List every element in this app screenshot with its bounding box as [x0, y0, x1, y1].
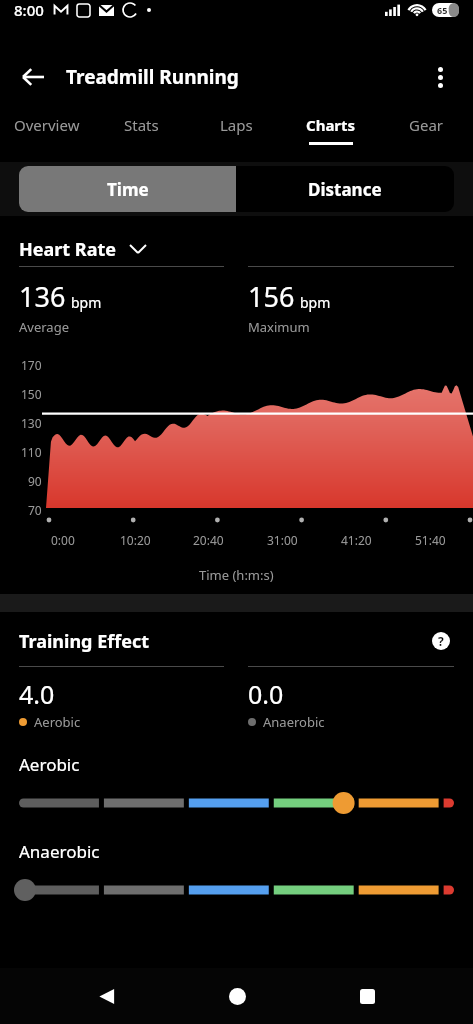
- staticText: 170: [21, 357, 42, 373]
- staticText: Treadmill Running: [66, 64, 239, 90]
- staticText: 150: [21, 386, 42, 402]
- staticText: 156: [248, 278, 295, 315]
- staticText: Anaerobic: [19, 840, 100, 863]
- staticText: Gear: [409, 115, 443, 135]
- staticText: bpm: [71, 293, 102, 312]
- staticText: 0.0: [248, 677, 284, 711]
- staticText: 130: [21, 415, 42, 431]
- staticText: 110: [21, 444, 42, 460]
- staticText: Overview: [14, 115, 80, 135]
- staticText: Time: [107, 178, 149, 201]
- staticText: 0:00: [51, 532, 75, 548]
- staticText: Time (h:m:s): [199, 566, 274, 584]
- button[interactable]: Home: [213, 972, 261, 1020]
- staticText: 8:00: [14, 0, 44, 20]
- button[interactable]: Gear: [378, 106, 473, 154]
- button[interactable]: Distance: [236, 166, 454, 212]
- button[interactable]: Recent apps: [343, 972, 391, 1020]
- button[interactable]: Heart Rate: [19, 232, 454, 266]
- staticText: Laps: [220, 115, 253, 135]
- staticText: Stats: [124, 115, 159, 135]
- staticText: Heart Rate: [19, 237, 116, 262]
- button[interactable]: Stats: [94, 106, 188, 154]
- staticText: 65: [437, 4, 448, 16]
- staticText: Average: [19, 318, 69, 336]
- staticText: 31:00: [267, 532, 298, 548]
- staticText: bpm: [300, 293, 331, 312]
- button[interactable]: More options: [417, 54, 463, 100]
- staticText: 90: [28, 473, 42, 489]
- staticText: 4.0: [19, 677, 55, 711]
- staticText: Aerobic: [19, 753, 80, 776]
- button[interactable]: Overview: [0, 106, 94, 154]
- button[interactable]: Back: [82, 972, 130, 1020]
- staticText: 10:20: [120, 532, 151, 548]
- staticText: 70: [28, 502, 42, 518]
- staticText: Anaerobic: [263, 713, 325, 731]
- staticText: 136: [19, 278, 66, 315]
- staticText: Aerobic: [34, 713, 81, 731]
- button[interactable]: Back: [10, 54, 56, 100]
- button[interactable]: Help: [428, 628, 454, 654]
- staticText: 41:20: [341, 532, 372, 548]
- staticText: 51:40: [415, 532, 446, 548]
- staticText: Training Effect: [19, 629, 149, 654]
- button[interactable]: Charts: [283, 106, 378, 154]
- button[interactable]: Laps: [188, 106, 283, 154]
- staticText: 20:40: [193, 532, 224, 548]
- staticText: Distance: [308, 178, 382, 201]
- button[interactable]: Time: [19, 166, 236, 212]
- staticText: Maximum: [248, 318, 310, 336]
- staticText: Charts: [306, 115, 356, 135]
- staticText: ?: [438, 633, 444, 649]
